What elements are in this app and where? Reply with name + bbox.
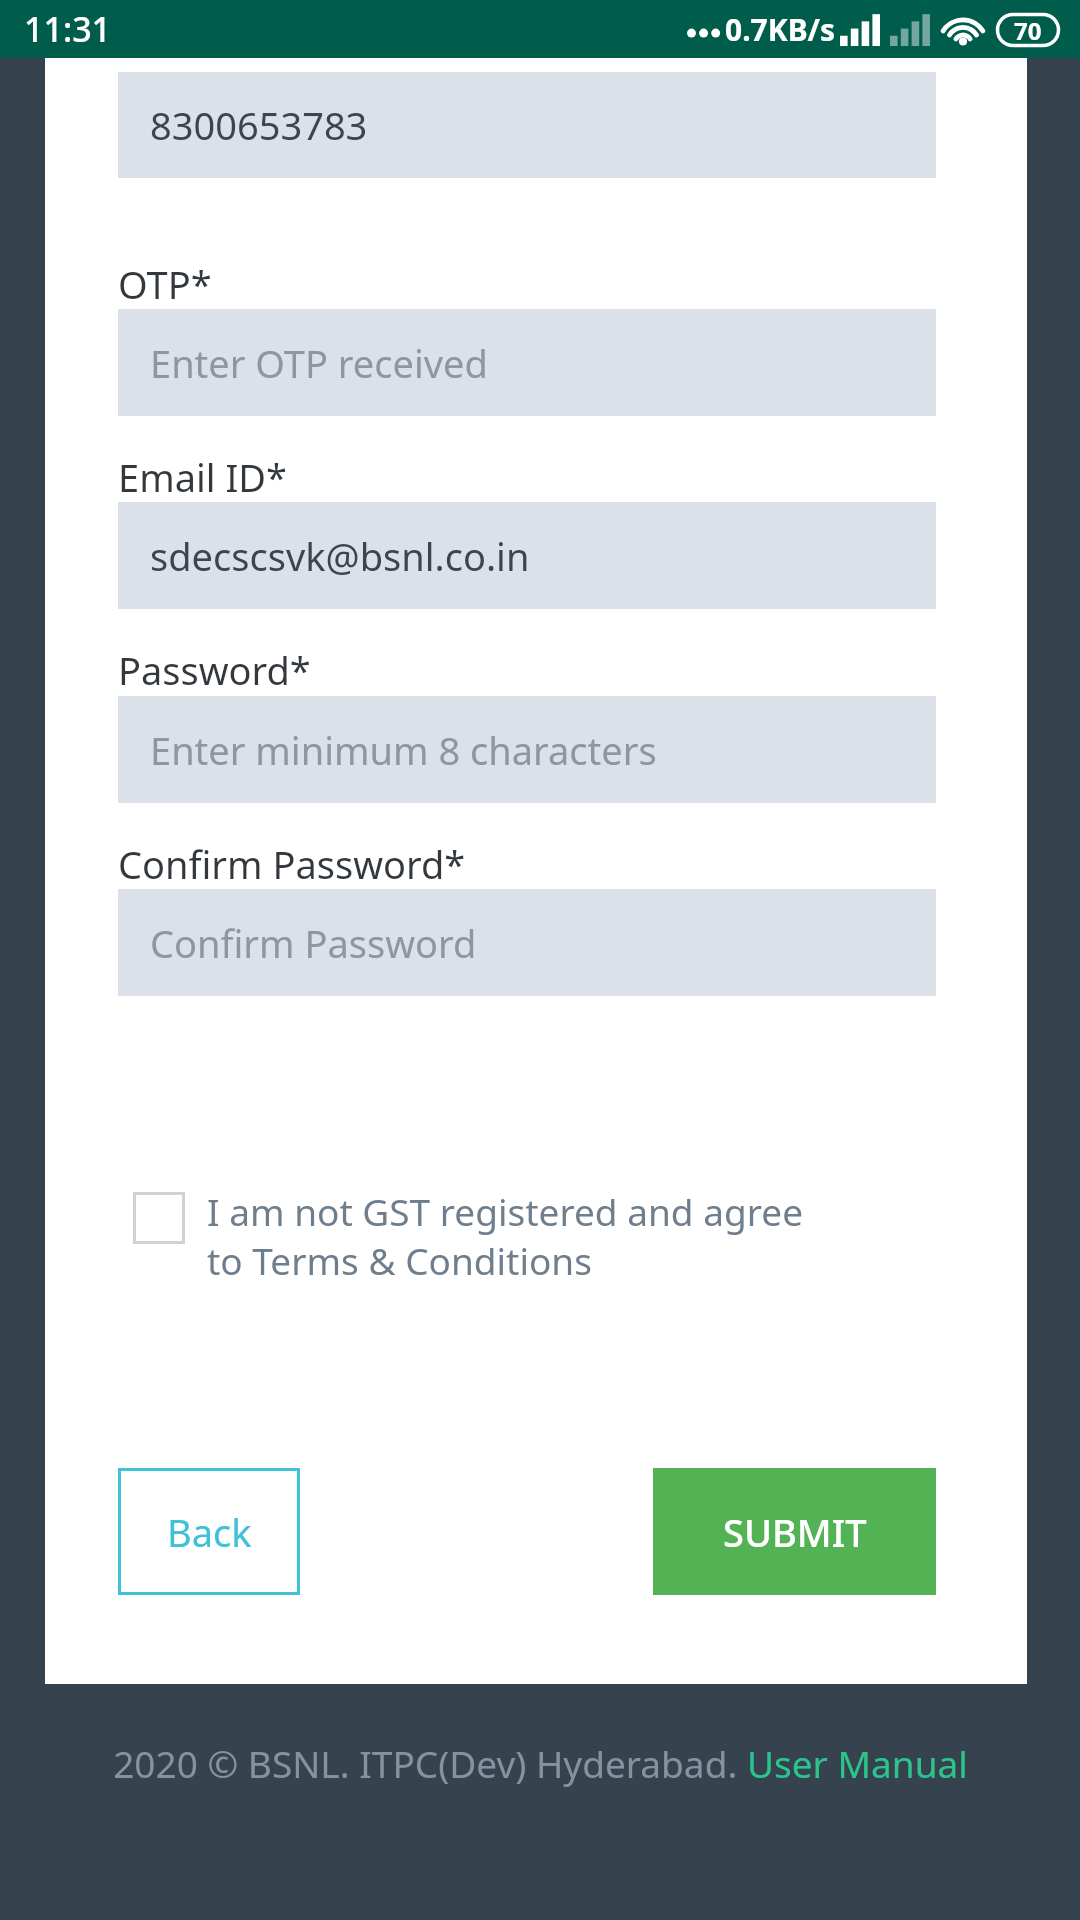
button[interactable]: 2020 © BSNL. ITPC(Dev) Hyderabad. User M… <box>113 1738 968 1788</box>
staticText: Enter minimum 8 characters <box>150 724 657 776</box>
button[interactable]: Enter OTP received <box>118 309 936 416</box>
button[interactable]: Confirm Password <box>118 889 936 996</box>
staticText: SUBMIT <box>723 1506 867 1558</box>
staticText: Password* <box>118 644 311 696</box>
button[interactable]: sdecscsvk@bsnl.co.in <box>118 502 936 609</box>
staticText: sdecscsvk@bsnl.co.in <box>150 530 530 582</box>
staticText: 11:31 <box>24 6 112 52</box>
staticText: 0.7KB/s <box>725 9 836 50</box>
button[interactable]: 8300653783 <box>118 72 936 178</box>
button[interactable]: Back <box>118 1468 300 1595</box>
button[interactable]: I am not GST registered and agree to Ter… <box>133 1186 873 1286</box>
staticText: 8300653783 <box>150 99 368 151</box>
button[interactable]: Enter minimum 8 characters <box>118 696 936 803</box>
staticText: Email ID* <box>118 451 288 503</box>
staticText: OTP* <box>118 258 212 310</box>
staticText: Confirm Password <box>150 917 477 969</box>
staticText: 70 <box>1014 14 1042 47</box>
staticText: Confirm Password* <box>118 838 466 890</box>
staticText: Enter OTP received <box>150 337 488 389</box>
staticText: Back <box>167 1506 252 1558</box>
button[interactable]: SUBMIT <box>653 1468 936 1595</box>
staticText: I am not GST registered and agree to Ter… <box>207 1186 817 1286</box>
